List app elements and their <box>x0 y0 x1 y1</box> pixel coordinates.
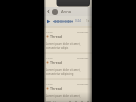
staticText: Lorem ipsum dolor sit amet, consectetur … <box>46 42 88 50</box>
button[interactable]: Action 3 <box>86 101 90 102</box>
button[interactable]: 12:30 <box>44 27 92 53</box>
staticText: 1x <box>86 19 90 23</box>
staticText: Message <box>53 101 66 102</box>
staticText: 12:30 <box>46 30 53 33</box>
button[interactable]: Action 0 <box>68 101 72 102</box>
button[interactable]: Play voice message <box>46 19 51 24</box>
button[interactable]: Back <box>46 9 51 14</box>
staticText: Anna <box>61 9 71 14</box>
staticText: 12:30 <box>46 56 53 59</box>
staticText: yesterday <box>77 56 89 59</box>
button[interactable]: Action 1 <box>74 101 78 102</box>
button[interactable]: 12:30 <box>44 53 92 79</box>
staticText: 12:30 <box>46 82 53 85</box>
staticText: 0:24 <box>75 19 81 23</box>
staticText: Thread <box>50 86 63 91</box>
staticText: Lorem ipsum dolor sit amet, consec <box>46 94 88 98</box>
staticText: Thread <box>50 34 63 39</box>
button[interactable]: Action 2 <box>80 101 84 102</box>
staticText: Thread <box>50 60 63 65</box>
staticText: yesterday <box>77 82 89 85</box>
button[interactable]: 12:30 <box>44 79 92 101</box>
staticText: Lorem ipsum dolor sit amet, consectetur … <box>46 68 88 76</box>
staticText: yesterday <box>77 30 89 33</box>
